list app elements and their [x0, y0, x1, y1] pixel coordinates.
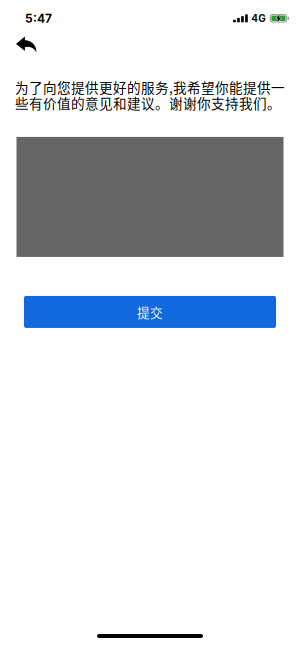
button[interactable]: 提交	[24, 296, 276, 328]
staticText: 提交	[137, 303, 163, 321]
button[interactable]: Back	[16, 29, 49, 58]
button[interactable]: Feedback text field	[16, 137, 283, 257]
staticText: 4G	[251, 12, 266, 24]
staticText: 5:47	[25, 11, 52, 25]
staticText: 为了向您提供更好的服务,我希望你能提供一些有价值的意见和建议。谢谢你支持我们。	[15, 79, 285, 111]
